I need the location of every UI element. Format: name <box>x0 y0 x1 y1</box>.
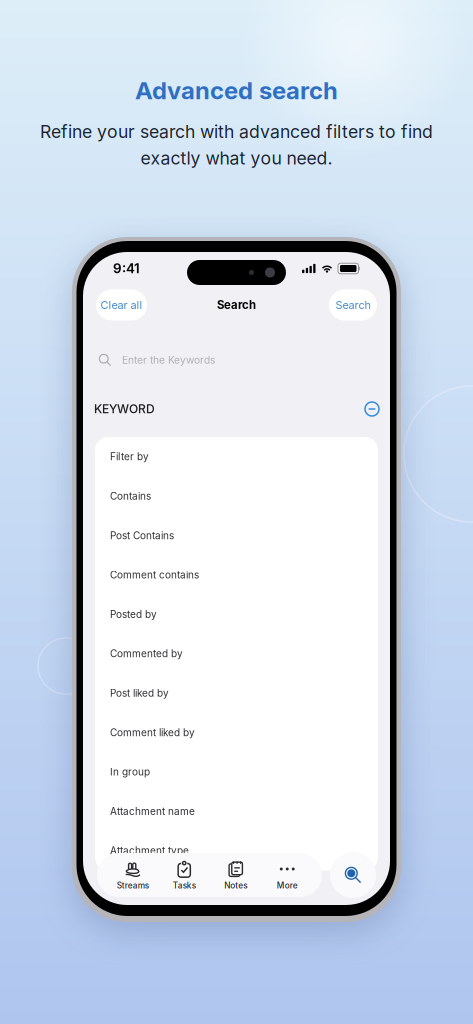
staticText: Commented by <box>110 648 183 660</box>
staticText: Clear all <box>100 298 142 312</box>
button[interactable]: Search <box>329 289 377 320</box>
staticText: Contains <box>110 490 151 502</box>
button[interactable]: Filter by <box>95 437 378 476</box>
button[interactable]: Clear all <box>96 289 147 320</box>
staticText: Attachment type <box>110 845 189 857</box>
staticText: Notes <box>224 880 247 890</box>
button[interactable]: Attachment type <box>95 831 378 870</box>
staticText: Attachment name <box>110 805 195 817</box>
staticText: exactly what you need. <box>140 147 332 169</box>
button[interactable]: Comment contains <box>95 555 378 595</box>
button[interactable]: Collapse keyword section <box>365 402 379 416</box>
button[interactable]: More <box>261 853 313 897</box>
button[interactable]: Post Contains <box>95 516 378 555</box>
staticText: 9:41 <box>113 260 140 276</box>
staticText: Streams <box>117 880 149 890</box>
button[interactable]: Commented by <box>95 634 378 673</box>
button[interactable]: Posted by <box>95 595 378 634</box>
staticText: Comment contains <box>110 569 199 581</box>
staticText: Post liked by <box>110 687 169 699</box>
staticText: Filter by <box>110 451 149 463</box>
staticText: Advanced search <box>135 76 338 105</box>
staticText: Refine your search with advanced filters… <box>40 121 433 142</box>
button[interactable]: Contains <box>95 476 378 516</box>
staticText: In group <box>110 766 150 778</box>
staticText: Posted by <box>110 608 157 620</box>
staticText: More <box>277 880 298 890</box>
staticText: Enter the Keywords <box>122 354 215 366</box>
button[interactable]: Tasks <box>158 853 210 897</box>
button[interactable]: Search <box>330 852 376 898</box>
staticText: Tasks <box>173 880 196 890</box>
button[interactable]: Comment liked by <box>95 713 378 752</box>
button[interactable]: In group <box>95 752 378 792</box>
staticText: Post Contains <box>110 529 174 542</box>
button[interactable]: Notes <box>210 853 261 897</box>
staticText: KEYWORD <box>94 402 155 416</box>
button[interactable]: Post liked by <box>95 673 378 713</box>
button[interactable]: Attachment name <box>95 792 378 831</box>
button[interactable]: Streams <box>107 853 158 897</box>
staticText: Comment liked by <box>110 726 195 739</box>
staticText: Search <box>217 298 256 312</box>
staticText: Search <box>335 298 370 312</box>
